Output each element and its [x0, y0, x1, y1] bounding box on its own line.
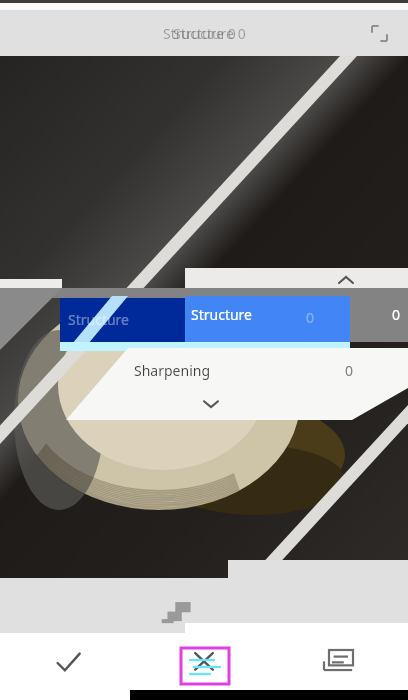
staticText: 0: [306, 308, 315, 327]
staticText: Structure 0: [173, 24, 246, 43]
staticText: Sharpening: [134, 361, 211, 380]
staticText: Structure 0: [163, 24, 236, 43]
staticText: Structure: [68, 310, 129, 329]
button[interactable]: Compare: [364, 18, 394, 48]
button[interactable]: Apply: [0, 633, 136, 693]
staticText: 0: [392, 305, 401, 324]
button[interactable]: Structure 0: [0, 10, 408, 56]
staticText: 0: [345, 361, 354, 380]
staticText: Structure: [191, 305, 252, 324]
button[interactable]: Stacks: [272, 633, 408, 693]
button[interactable]: Cancel: [136, 633, 272, 693]
button[interactable]: Expand: [200, 393, 222, 415]
button[interactable]: Collapse: [334, 268, 358, 292]
